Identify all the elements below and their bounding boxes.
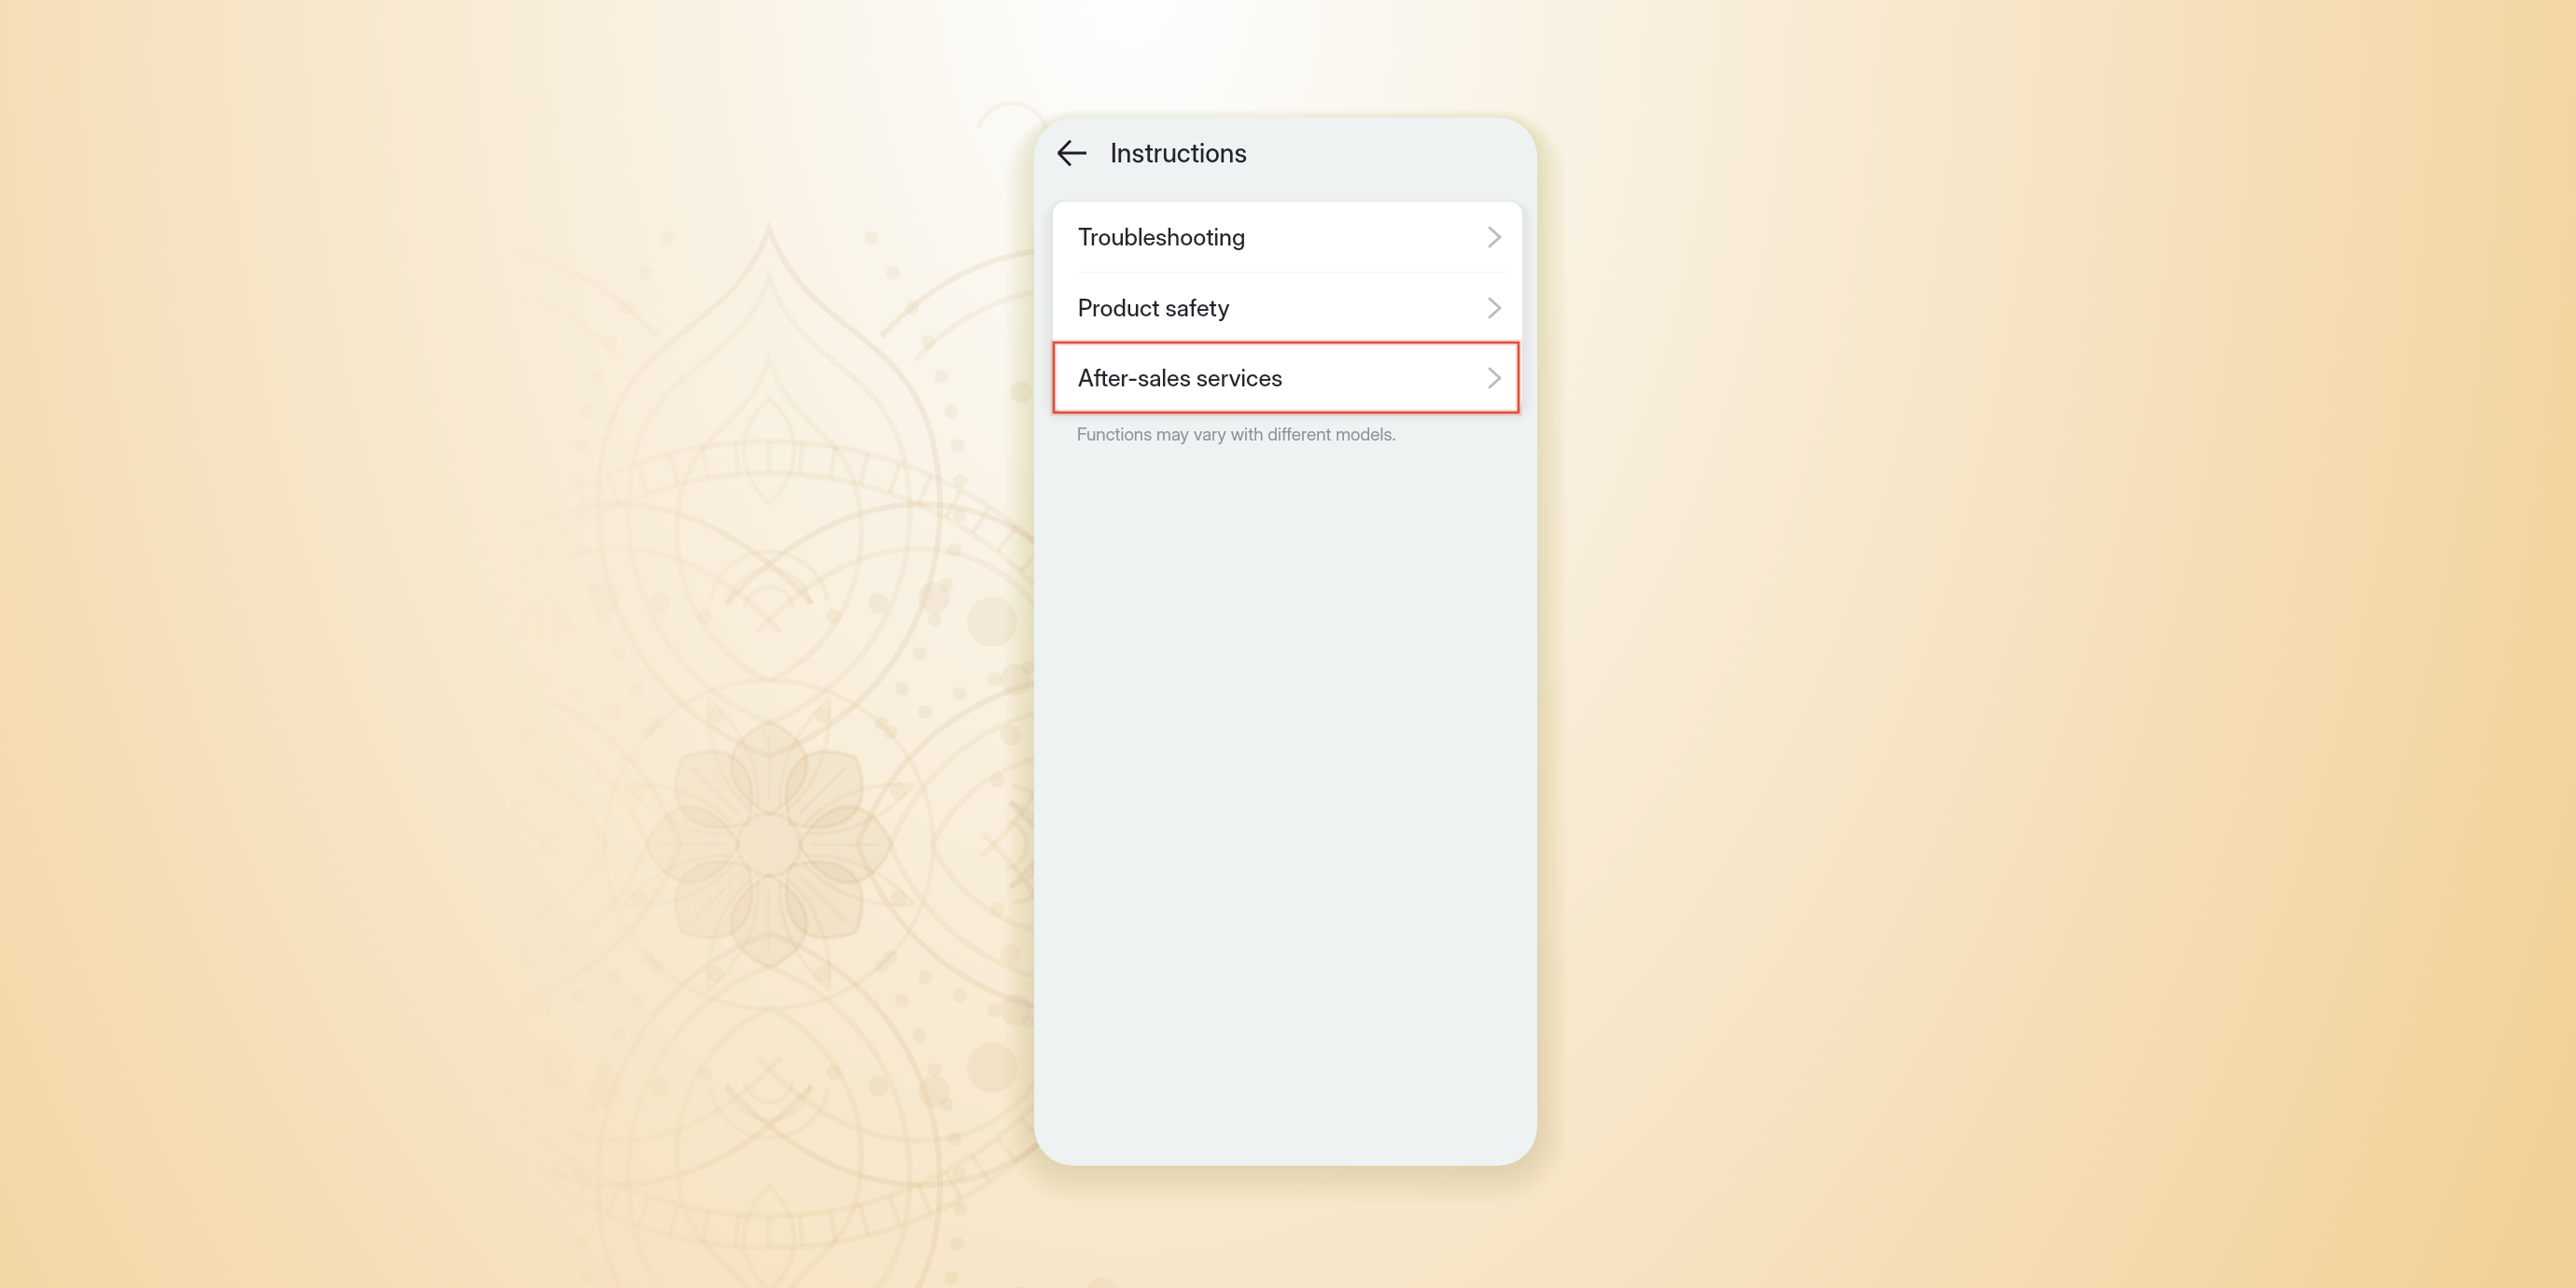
button[interactable]: After-sales services [1053, 343, 1522, 413]
staticText: Functions may vary with different models… [1077, 424, 1396, 445]
button[interactable]: Product safety [1053, 273, 1522, 343]
staticText: Product safety [1078, 294, 1230, 322]
staticText: Troubleshooting [1078, 223, 1246, 251]
button[interactable]: Back [1049, 130, 1096, 176]
staticText: Instructions [1111, 137, 1248, 169]
staticText: After-sales services [1078, 364, 1283, 392]
button[interactable]: Troubleshooting [1053, 202, 1522, 273]
